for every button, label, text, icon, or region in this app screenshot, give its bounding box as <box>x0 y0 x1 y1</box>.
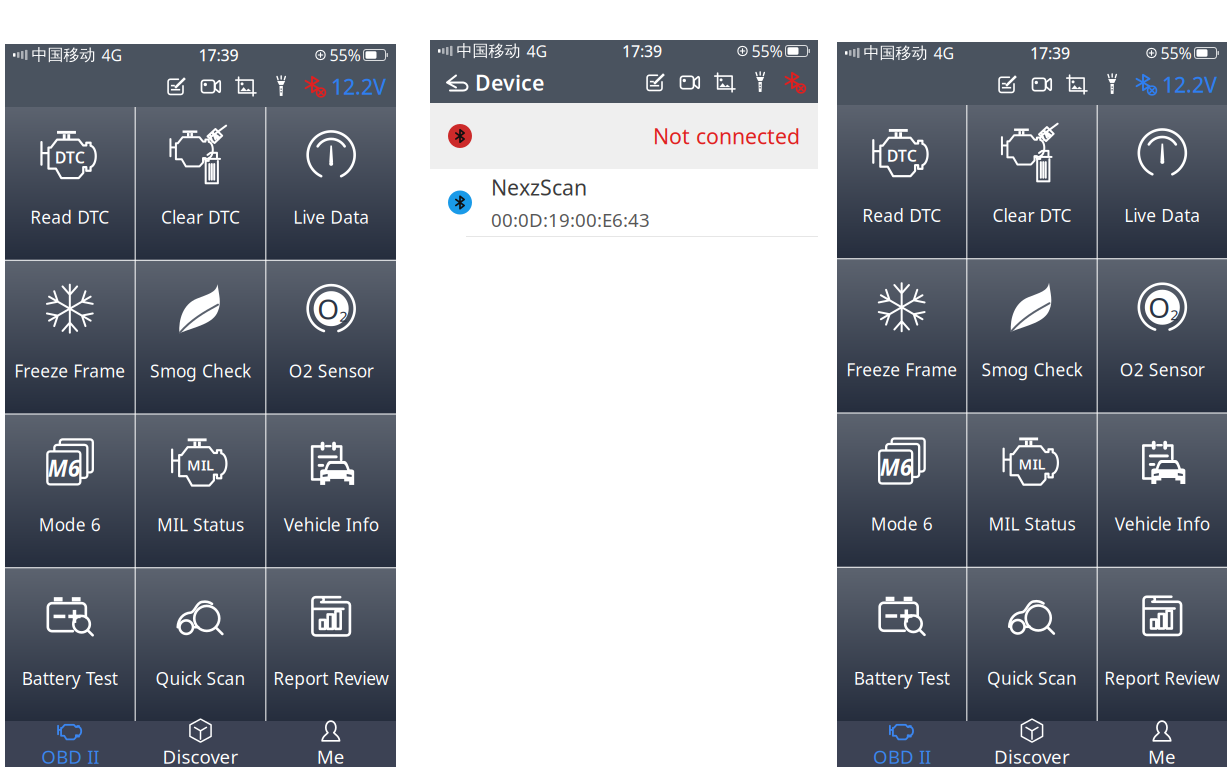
staticText: Smog Check <box>981 358 1082 381</box>
staticText: 55% <box>751 40 782 62</box>
staticText: 中国移动 <box>31 45 95 65</box>
button[interactable]: M6 <box>5 414 135 567</box>
staticText: 17:39 <box>622 40 662 62</box>
staticText: Smog Check <box>150 359 251 382</box>
button[interactable]: DTC <box>5 107 135 260</box>
button[interactable]: Flashlight <box>1094 73 1130 95</box>
staticText: DTC <box>55 147 85 168</box>
staticText: Read DTC <box>862 204 941 227</box>
staticText: Freeze Frame <box>14 359 125 382</box>
staticText: OBD II <box>41 744 99 767</box>
button[interactable]: MIL <box>136 414 265 567</box>
button[interactable]: Smog Check <box>136 261 265 414</box>
staticText: Discover <box>994 744 1070 767</box>
staticText: M6 <box>48 453 80 483</box>
button[interactable]: Live Data <box>266 107 396 260</box>
button[interactable]: Bluetooth <box>299 76 331 96</box>
staticText: MIL Status <box>988 512 1075 535</box>
staticText: DTC <box>887 145 917 166</box>
staticText: MIL <box>1018 454 1045 474</box>
button[interactable]: M6 <box>837 413 966 567</box>
staticText: Read DTC <box>30 205 109 228</box>
button[interactable]: Device <box>436 68 544 97</box>
button[interactable]: Live Data <box>1098 105 1227 258</box>
staticText: 17:39 <box>1030 42 1070 64</box>
button[interactable]: Screenshot <box>1059 74 1094 95</box>
button[interactable]: Smog Check <box>967 259 1097 412</box>
staticText: Freeze Frame <box>846 358 957 381</box>
staticText: 12.2V <box>1162 70 1217 99</box>
staticText: 2 <box>339 306 347 326</box>
button[interactable]: Freeze Frame <box>5 261 135 414</box>
staticText: Battery Test <box>854 667 950 690</box>
staticText: 中国移动 <box>456 41 520 61</box>
staticText: 4G <box>933 42 954 64</box>
button[interactable]: Discover <box>967 720 1097 767</box>
staticText: Live Data <box>1124 204 1200 227</box>
staticText: Me <box>1148 744 1176 767</box>
staticText: 4G <box>101 44 122 66</box>
button[interactable]: OBD II <box>5 720 135 767</box>
staticText: OBD II <box>873 744 931 767</box>
button[interactable]: NexzScan <box>430 169 818 237</box>
staticText: MIL <box>187 455 214 475</box>
button[interactable]: OBD II <box>837 720 967 767</box>
button[interactable]: Record video <box>1024 74 1059 95</box>
staticText: Clear DTC <box>992 204 1071 227</box>
button[interactable]: Flashlight <box>263 75 299 97</box>
staticText: Report Review <box>1104 667 1220 690</box>
button[interactable]: Screenshot <box>228 76 263 97</box>
button[interactable]: Bluetooth <box>778 72 812 92</box>
button[interactable]: Report Review <box>266 568 396 721</box>
staticText: 4G <box>526 40 547 62</box>
staticText: Vehicle Info <box>1115 512 1210 535</box>
staticText: Device <box>475 68 544 97</box>
staticText: 中国移动 <box>863 43 927 63</box>
button[interactable]: O <box>1098 259 1227 412</box>
button[interactable]: Record video <box>193 76 228 97</box>
staticText: Not connected <box>653 122 800 150</box>
staticText: Discover <box>162 744 238 767</box>
staticText: O2 Sensor <box>1120 358 1205 381</box>
staticText: NexzScan <box>491 173 587 201</box>
button[interactable]: Quick Scan <box>136 568 265 721</box>
button[interactable]: Freeze Frame <box>837 259 966 412</box>
button[interactable]: Battery Test <box>837 568 966 721</box>
staticText: Me <box>317 744 345 767</box>
button[interactable]: Screenshot <box>707 72 742 93</box>
button[interactable]: Vehicle Info <box>266 414 396 567</box>
staticText: MIL Status <box>157 513 244 536</box>
button[interactable]: MIL <box>967 413 1097 567</box>
staticText: 2 <box>1170 305 1178 324</box>
staticText: O <box>317 290 339 327</box>
button[interactable]: Report Review <box>1098 568 1227 721</box>
button[interactable]: Record video <box>672 72 707 93</box>
staticText: Clear DTC <box>161 205 240 228</box>
staticText: Vehicle Info <box>284 513 379 536</box>
staticText: 00:0D:19:00:E6:43 <box>491 207 650 232</box>
staticText: O <box>1148 289 1170 326</box>
button[interactable]: Me <box>266 720 396 767</box>
staticText: 55% <box>329 44 360 66</box>
staticText: Battery Test <box>22 667 118 690</box>
button[interactable]: Vehicle Info <box>1098 413 1227 567</box>
button[interactable]: O <box>266 261 396 414</box>
button[interactable]: DTC <box>837 105 966 258</box>
button[interactable]: Notes <box>637 72 672 93</box>
staticText: Quick Scan <box>155 667 245 690</box>
staticText: Mode 6 <box>871 512 933 535</box>
button[interactable]: Discover <box>135 720 266 767</box>
staticText: Mode 6 <box>39 513 101 536</box>
button[interactable]: Battery Test <box>5 568 135 721</box>
staticText: 17:39 <box>198 44 238 66</box>
staticText: Live Data <box>293 205 369 228</box>
button[interactable]: Clear DTC <box>967 105 1097 258</box>
button[interactable]: Bluetooth <box>1130 74 1162 94</box>
button[interactable]: Me <box>1097 720 1227 767</box>
button[interactable]: Flashlight <box>742 71 778 93</box>
button[interactable]: Clear DTC <box>136 107 265 260</box>
button[interactable]: Notes <box>989 74 1024 95</box>
button[interactable]: Notes <box>158 76 193 97</box>
staticText: Quick Scan <box>987 667 1077 690</box>
button[interactable]: Quick Scan <box>967 568 1097 721</box>
